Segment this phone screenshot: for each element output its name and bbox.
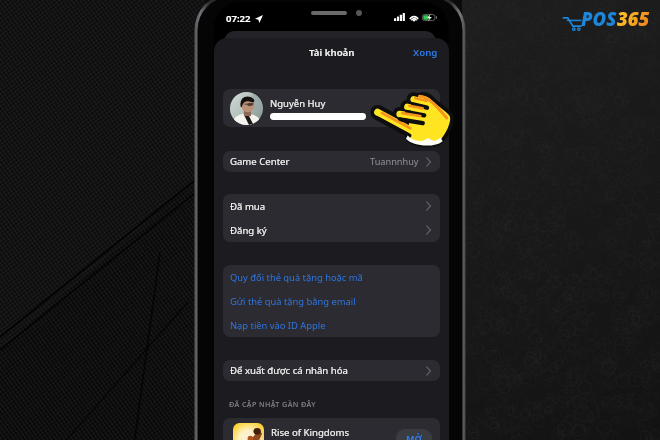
button[interactable]: Nạp tiền vào ID Apple (223, 313, 440, 337)
staticText: POS (581, 6, 617, 31)
staticText: Để xuất được cá nhân hóa (230, 364, 348, 377)
button[interactable]: MỞ (396, 429, 432, 440)
staticText: MỞ (406, 432, 422, 440)
staticText: 07:22 (226, 12, 251, 25)
button[interactable]: Để xuất được cá nhân hóa (223, 360, 440, 381)
other: POS365 logo (563, 15, 581, 31)
button[interactable]: Gửi thẻ quà tặng bằng email (223, 289, 440, 313)
staticText: ĐÃ CẬP NHẬT GẦN ĐÂY (229, 399, 316, 409)
staticText: Game Center (230, 155, 290, 168)
button[interactable]: Rise of Kingdoms (223, 418, 440, 440)
staticText: Xong (413, 46, 438, 59)
button[interactable]: Đăng ký (223, 218, 440, 242)
button[interactable]: Game Center (223, 151, 440, 172)
staticText: Gửi thẻ quà tặng bằng email (230, 295, 356, 308)
staticText: Đã mua (230, 200, 266, 213)
button[interactable]: Đã mua (223, 194, 440, 218)
button[interactable]: Xong (402, 40, 449, 65)
button[interactable]: Nguyễn Huy (223, 89, 440, 127)
other: Pointer (375, 92, 451, 144)
staticText: Nguyễn Huy (270, 97, 326, 110)
staticText: 365 (617, 6, 650, 31)
staticText: Rise of Kingdoms (271, 426, 350, 439)
button[interactable]: Quy đổi thẻ quà tặng hoặc mã (223, 265, 440, 289)
staticText: Tuannnhuy (370, 155, 419, 168)
staticText: Tài khoản (309, 46, 355, 59)
staticText: Quy đổi thẻ quà tặng hoặc mã (230, 271, 363, 284)
staticText: Đăng ký (230, 224, 267, 237)
staticText: Nạp tiền vào ID Apple (230, 319, 326, 332)
